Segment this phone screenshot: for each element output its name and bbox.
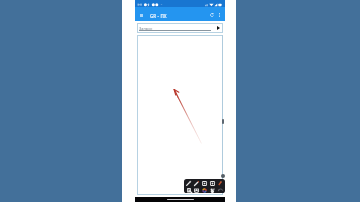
button[interactable]: Stamp	[209, 187, 216, 193]
button[interactable]: Marker	[193, 180, 200, 186]
button[interactable]: Sticker	[193, 187, 200, 193]
button[interactable]: Undo	[217, 187, 224, 193]
button[interactable]: Pen	[185, 180, 192, 186]
button[interactable]: Запрос	[137, 23, 223, 33]
button[interactable]: Refresh	[208, 11, 216, 19]
staticText: Запрос	[139, 26, 153, 31]
button[interactable]: Shape fill	[201, 180, 208, 186]
button[interactable]: Eraser red	[216, 180, 223, 186]
button[interactable]: Home gesture bar	[167, 199, 194, 200]
staticText: GR - ПХ	[150, 13, 167, 19]
button[interactable]: Colour picker	[201, 187, 208, 193]
button[interactable]: Text	[186, 187, 193, 193]
button[interactable]: More options	[216, 11, 223, 18]
button[interactable]: Open navigation menu	[138, 12, 145, 19]
button[interactable]: Shape outline	[209, 180, 216, 186]
button[interactable]: Run query	[215, 25, 221, 31]
button[interactable]: Scroll handle	[222, 119, 224, 124]
button[interactable]: Resize handle	[221, 174, 225, 178]
